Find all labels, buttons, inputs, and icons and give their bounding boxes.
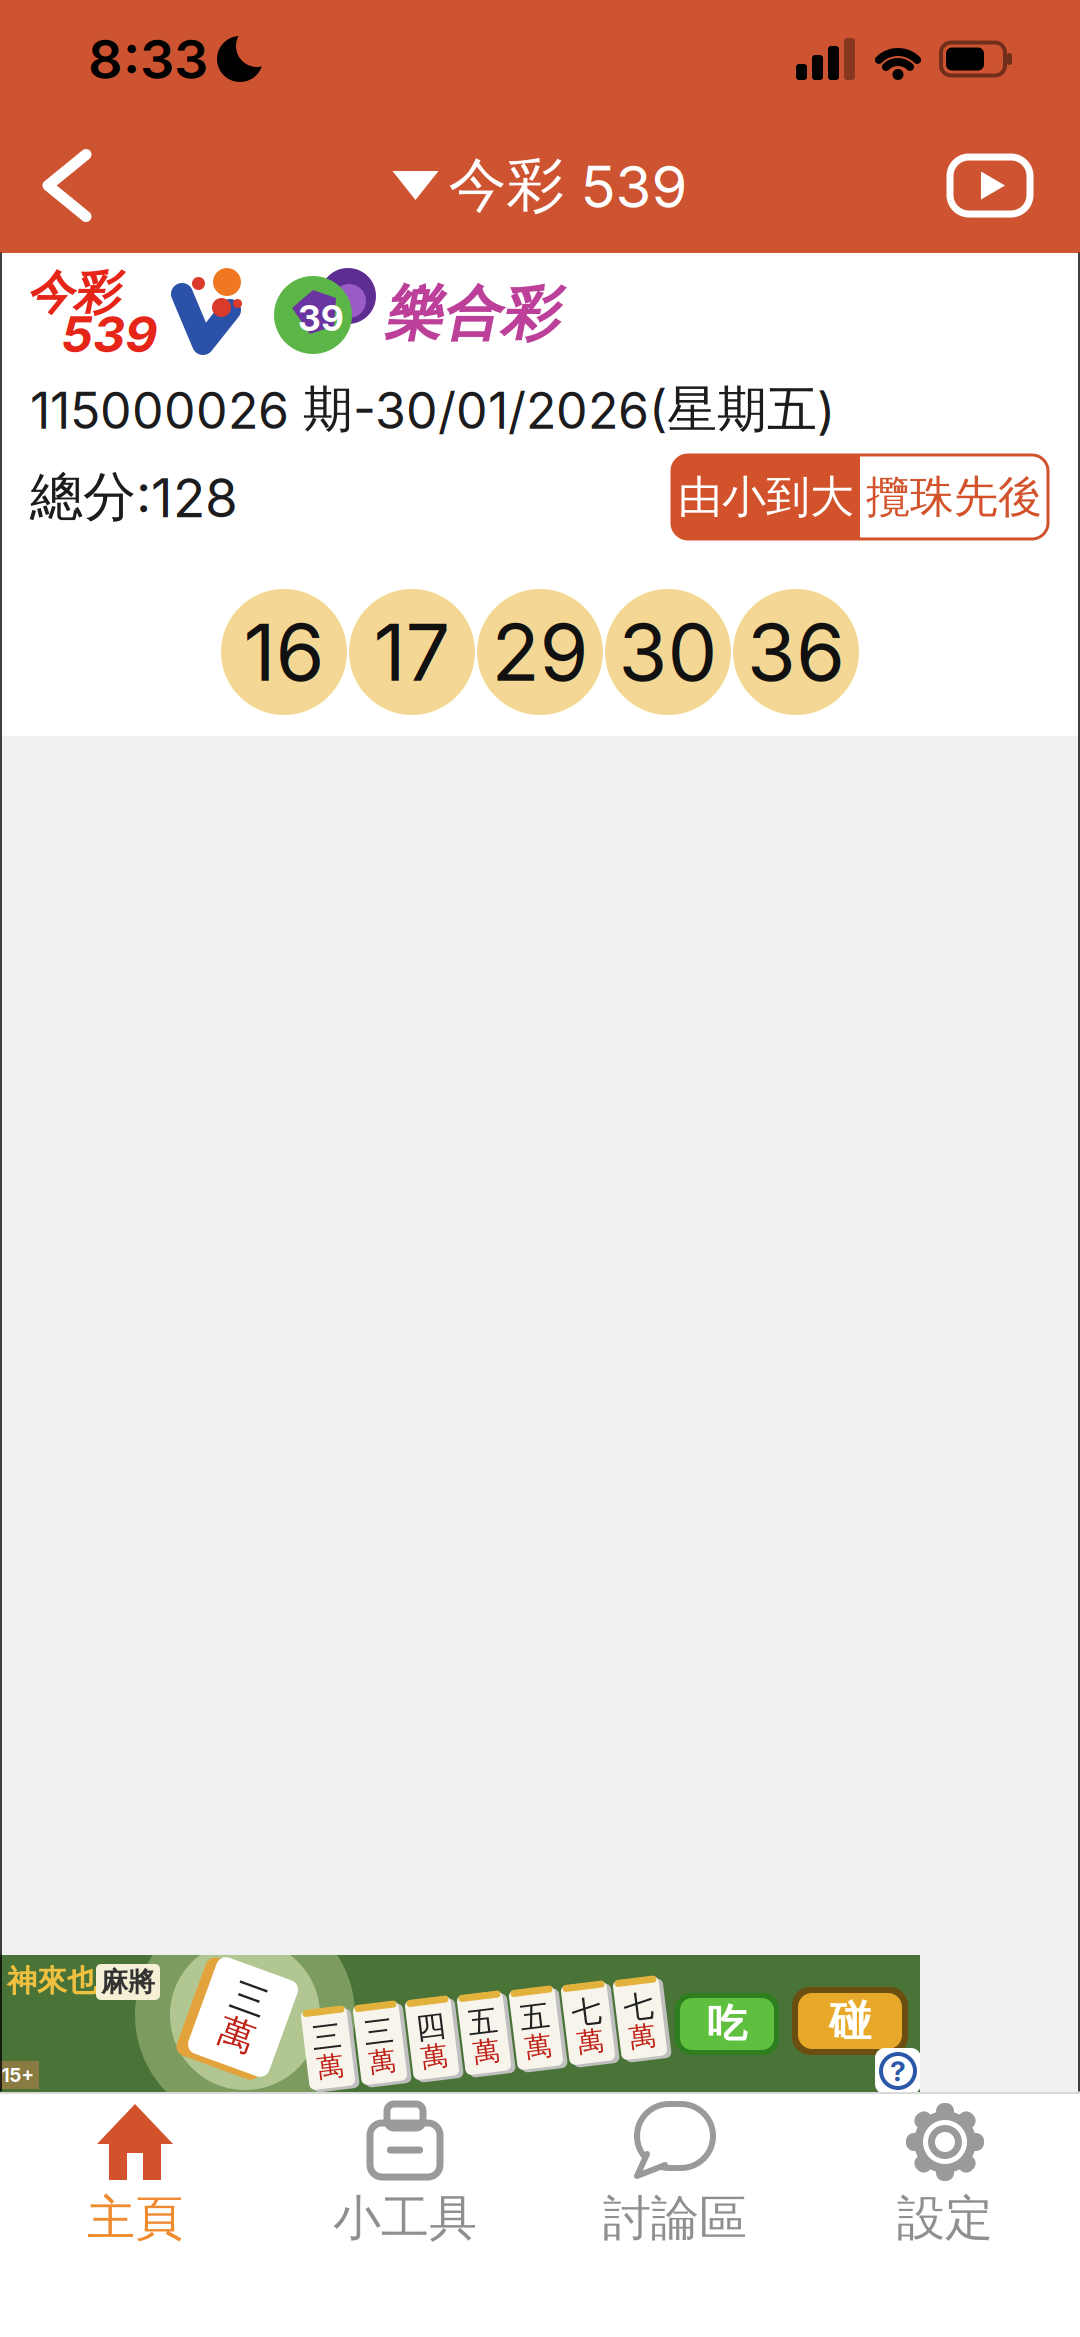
- staticText: 總分:128: [30, 464, 238, 530]
- staticText: 樂合彩: [384, 277, 558, 351]
- button[interactable]: 討論區: [540, 2102, 810, 2248]
- staticText: 539: [61, 304, 157, 364]
- staticText: 麻將: [101, 1965, 155, 1999]
- button[interactable]: Back: [0, 148, 98, 222]
- staticText: 神來也: [7, 1962, 97, 2000]
- staticText: 七: [573, 1993, 603, 2031]
- staticText: 29: [491, 604, 588, 700]
- staticText: 主頁: [87, 2188, 183, 2248]
- staticText: 今彩: [27, 264, 119, 322]
- button[interactable]: Videos: [948, 156, 1080, 214]
- staticText: 萬: [225, 2013, 261, 2058]
- staticText: 五: [521, 1998, 551, 2036]
- button[interactable]: 主頁: [0, 2102, 270, 2248]
- button[interactable]: 小工具: [270, 2102, 540, 2248]
- button[interactable]: 設定: [810, 2102, 1080, 2248]
- staticText: 萬: [574, 2025, 601, 2059]
- staticText: 三: [365, 2013, 395, 2051]
- staticText: 36: [747, 604, 845, 700]
- staticText: 五: [469, 2003, 499, 2041]
- staticText: 三: [225, 1976, 261, 2021]
- staticText: 萬: [314, 2050, 341, 2084]
- staticText: 30: [618, 604, 717, 700]
- staticText: 萬: [626, 2020, 653, 2054]
- staticText: 小工具: [333, 2188, 477, 2248]
- staticText: 今彩 539: [448, 149, 687, 222]
- button[interactable]: 今彩 539: [392, 149, 687, 222]
- staticText: 萬: [470, 2035, 497, 2069]
- staticText: 設定: [897, 2188, 993, 2248]
- staticText: 討論區: [603, 2188, 747, 2248]
- staticText: 萬: [522, 2030, 549, 2064]
- button[interactable]: 攬珠先後: [860, 455, 1048, 539]
- staticText: 8:33: [88, 26, 208, 92]
- staticText: 吃: [707, 1999, 747, 2049]
- staticText: 萬: [366, 2045, 393, 2079]
- button[interactable]: Advertisement: [0, 1955, 920, 2092]
- staticText: 由小到大: [678, 469, 854, 525]
- staticText: 攬珠先後: [866, 469, 1042, 525]
- staticText: 碰: [829, 1994, 871, 2047]
- staticText: 三: [313, 2018, 343, 2056]
- staticText: 四: [417, 2008, 447, 2046]
- button[interactable]: 由小到大: [672, 455, 860, 539]
- staticText: 39: [298, 296, 344, 340]
- staticText: 萬: [418, 2040, 445, 2074]
- staticText: 17: [373, 604, 450, 700]
- staticText: 七: [625, 1988, 655, 2026]
- staticText: ?: [890, 2054, 906, 2088]
- staticText: 16: [243, 604, 324, 700]
- staticText: 115000026 期-30/01/2026(星期五): [30, 378, 835, 441]
- staticText: 15+: [1, 2063, 34, 2086]
